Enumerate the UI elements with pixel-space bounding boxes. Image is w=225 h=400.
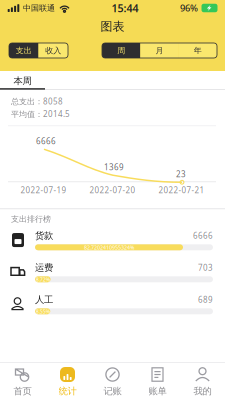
button[interactable]: 首页 xyxy=(0,363,45,399)
staticText: 703 xyxy=(198,262,213,273)
staticText: 中国联通 xyxy=(23,3,55,13)
button[interactable]: 人工 xyxy=(0,288,225,320)
staticText: 首页 xyxy=(13,385,31,397)
button[interactable]: 收入 xyxy=(38,43,68,58)
button[interactable]: 周 xyxy=(102,43,140,58)
staticText: 2022-07-19 xyxy=(20,185,66,195)
staticText: 我的 xyxy=(193,385,211,397)
button[interactable]: 本周 xyxy=(0,72,45,90)
button[interactable]: 年 xyxy=(179,43,217,58)
staticText: 总支出：8058 xyxy=(11,96,63,107)
button[interactable]: 运费 xyxy=(0,256,225,288)
staticText: 支出排行榜 xyxy=(11,214,51,224)
staticText: 本周 xyxy=(13,75,31,87)
staticText: 平均值：2014.5 xyxy=(11,109,70,119)
staticText: 周 xyxy=(117,46,125,55)
button[interactable]: 我的 xyxy=(180,363,225,399)
staticText: 2022-07-21 xyxy=(158,185,204,195)
staticText: 8.72% xyxy=(36,276,50,283)
staticText: 统计 xyxy=(58,385,76,397)
staticText: 23 xyxy=(176,169,186,179)
button[interactable]: 月 xyxy=(140,43,179,58)
staticText: 689 xyxy=(198,294,213,305)
staticText: 图表 xyxy=(100,19,124,34)
staticText: 15:44 xyxy=(111,1,138,15)
button[interactable]: 统计 xyxy=(45,363,90,399)
button[interactable]: 账单 xyxy=(135,363,180,399)
staticText: 人工 xyxy=(35,294,53,305)
staticText: 月 xyxy=(155,46,163,55)
staticText: 年 xyxy=(194,46,202,55)
staticText: 6666 xyxy=(36,136,56,146)
staticText: 收入 xyxy=(45,46,61,55)
button[interactable]: 记账 xyxy=(90,363,135,399)
staticText: 货款 xyxy=(35,230,53,241)
staticText: 2022-07-20 xyxy=(89,185,135,195)
staticText: 记账 xyxy=(103,385,121,397)
staticText: 账单 xyxy=(148,385,166,397)
button[interactable]: 货款 xyxy=(0,224,225,256)
staticText: 8.55% xyxy=(36,308,50,315)
staticText: 96% xyxy=(180,2,198,14)
staticText: 运费 xyxy=(35,262,53,273)
staticText: 1369 xyxy=(104,162,124,172)
staticText: 支出 xyxy=(16,46,32,55)
button[interactable]: 支出 xyxy=(9,43,38,58)
staticText: 6666 xyxy=(193,230,213,241)
staticText: 82.7202410955324% xyxy=(84,244,134,251)
